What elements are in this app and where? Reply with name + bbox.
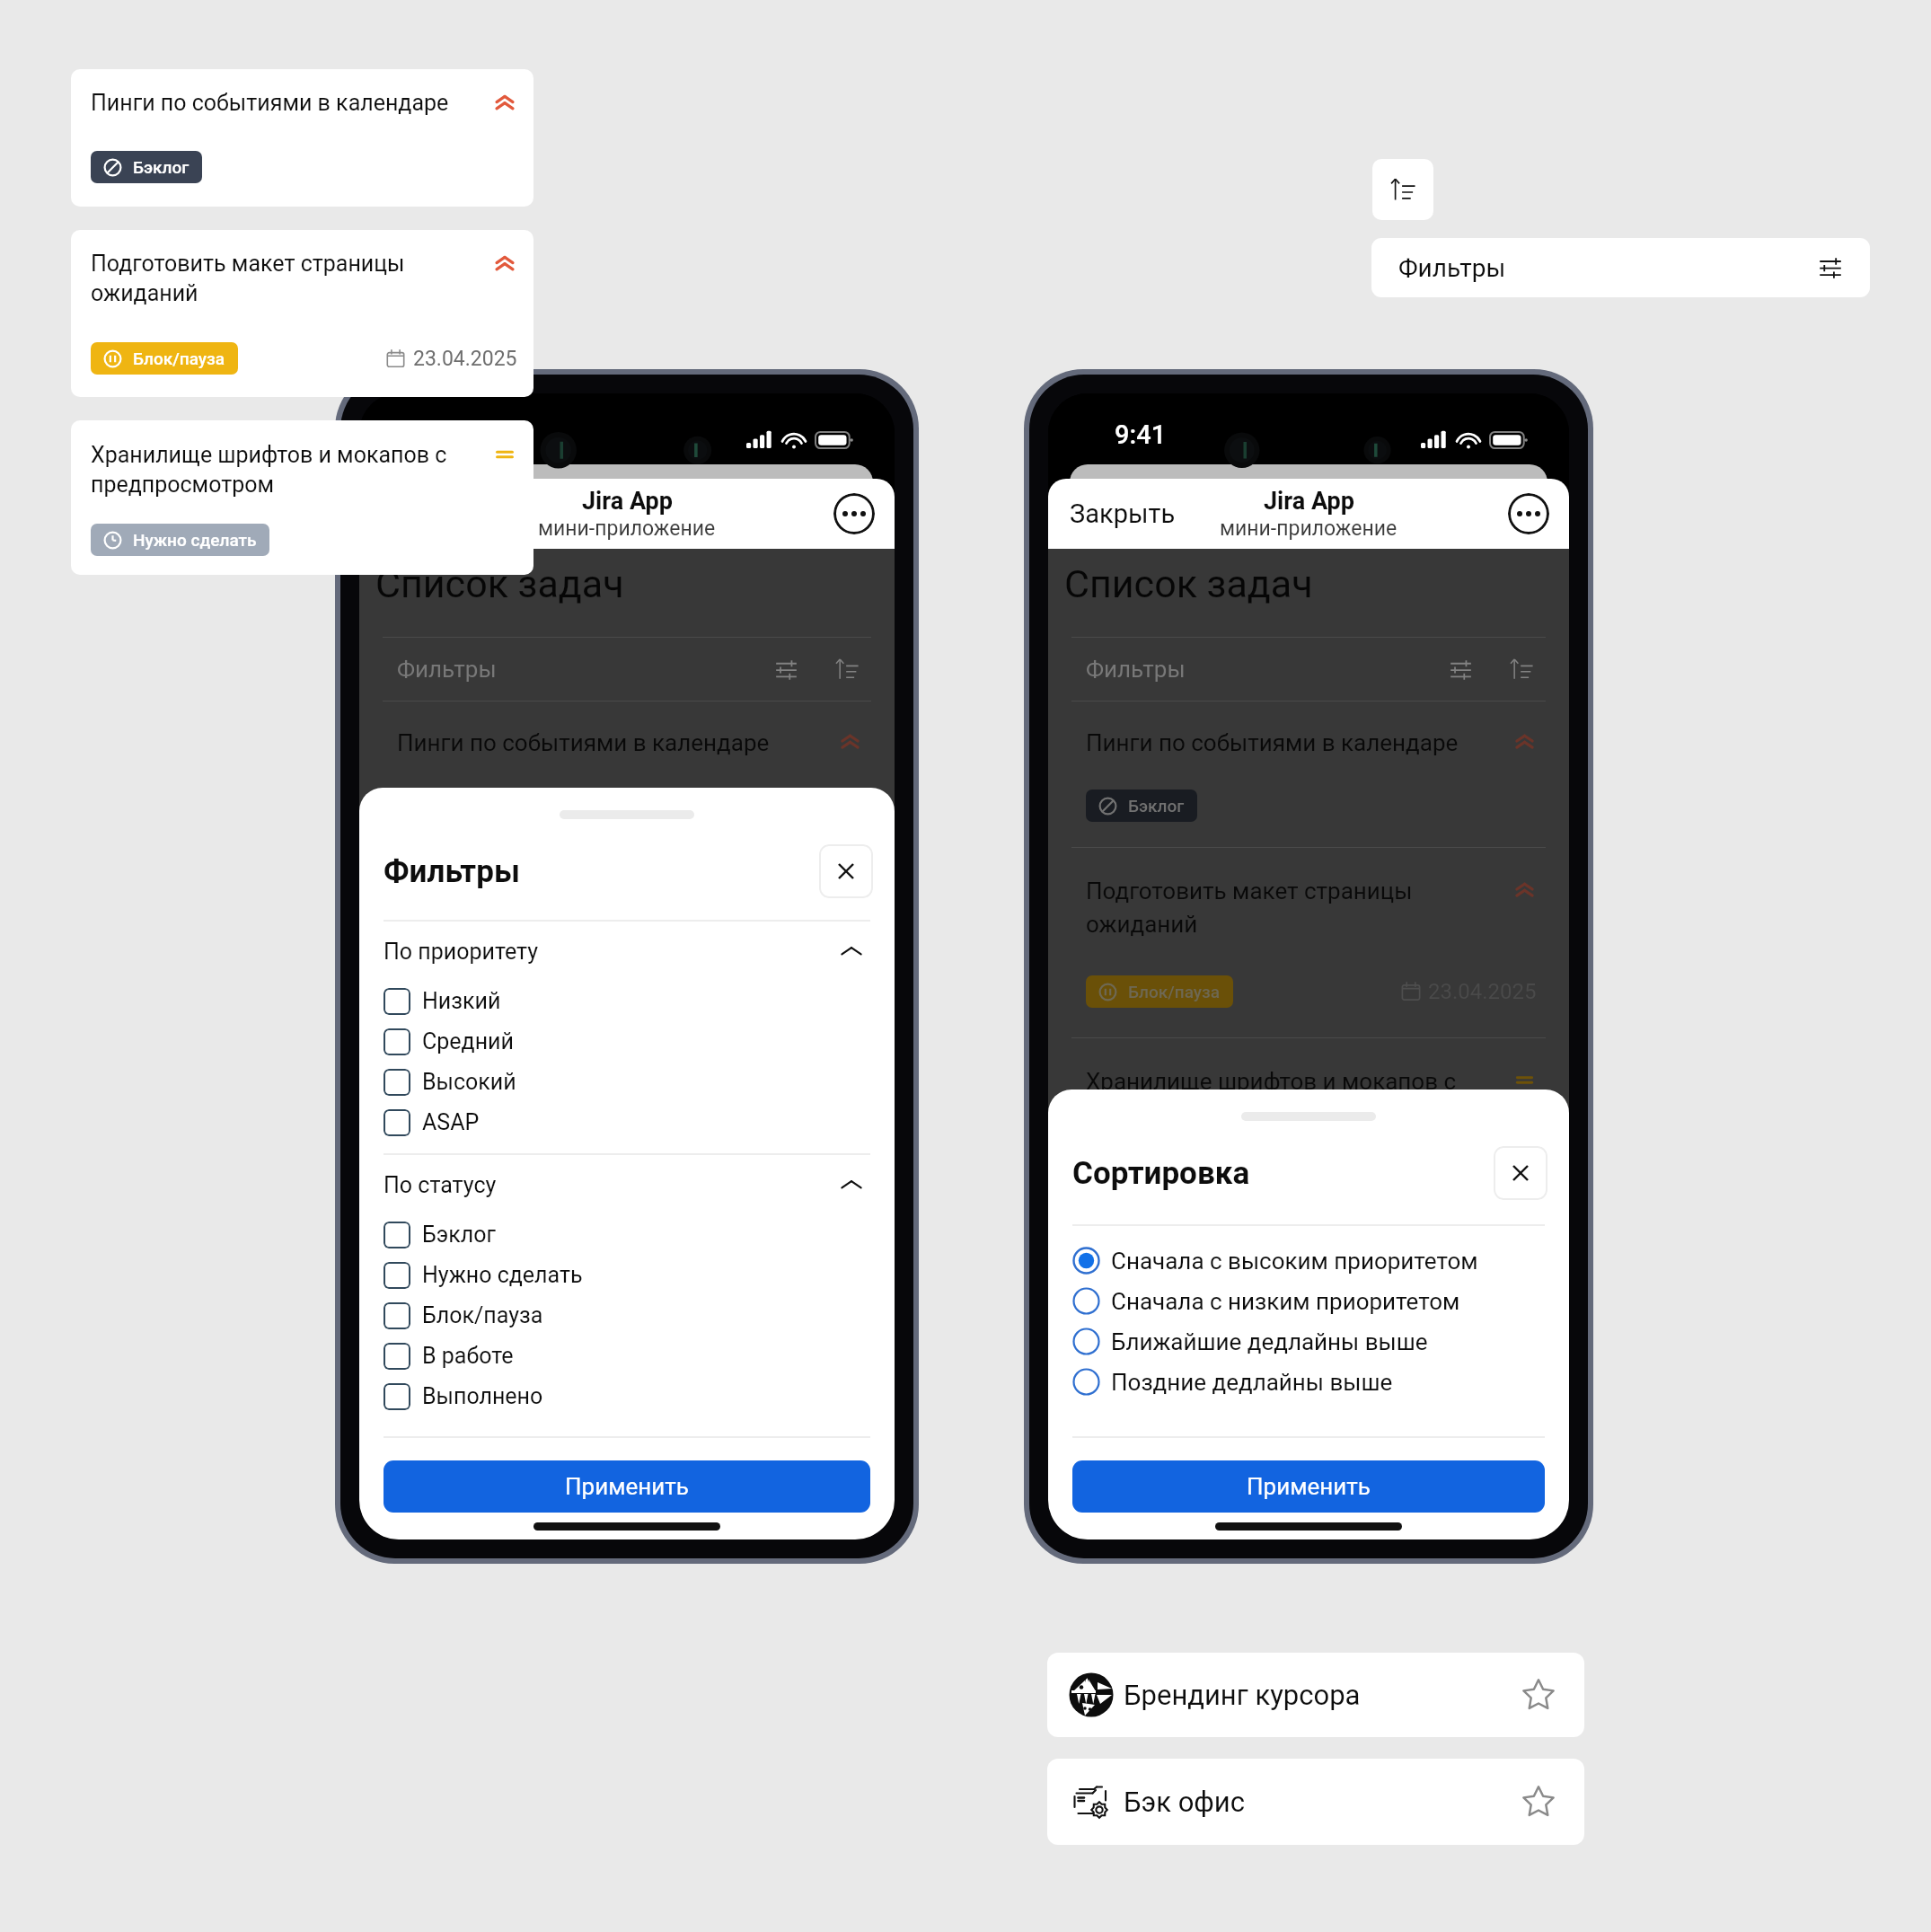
button[interactable]: Закрыть	[1048, 479, 1186, 549]
staticText: Список задач	[375, 561, 624, 606]
staticText: Jira App	[1264, 487, 1354, 516]
staticText: Пинги по событиями в календаре	[1086, 729, 1472, 756]
button[interactable]: Нужно сделать	[359, 1255, 895, 1295]
button[interactable]: Пинги по событиями в календаре	[1048, 701, 1569, 847]
staticText: Бэклог	[133, 157, 190, 177]
button[interactable]: Sort	[1372, 159, 1433, 220]
button[interactable]: ASAP	[359, 1102, 895, 1142]
staticText: По приоритету	[384, 939, 539, 965]
staticText: Подготовить макет страницы ожиданий	[1086, 878, 1472, 938]
staticText: Фильтры	[1398, 253, 1506, 283]
staticText: Фильтры	[1086, 656, 1186, 683]
button[interactable]: Подготовить макет страницы ожиданий	[1048, 848, 1569, 1037]
staticText: ASAP	[422, 1109, 480, 1135]
button[interactable]: Бэк офис	[1047, 1759, 1584, 1845]
staticText: Закрыть	[1070, 498, 1176, 529]
staticText: Высокий	[422, 1069, 516, 1095]
staticText: Брендинг курсора	[1124, 1679, 1361, 1711]
button[interactable]: Применить	[384, 1460, 870, 1513]
button[interactable]: Фильтры	[1048, 638, 1473, 701]
staticText: Применить	[565, 1473, 689, 1500]
button[interactable]: Пинги по событиями в календаре	[71, 69, 533, 207]
button[interactable]: Сначала с низким приоритетом	[1048, 1281, 1569, 1321]
staticText: Хранилище шрифтов и мокапов с предпросмо…	[91, 442, 483, 498]
button[interactable]: Хранилище шрифтов и мокапов с предпросмо…	[359, 1038, 895, 1128]
button[interactable]: Выполнено	[359, 1376, 895, 1416]
staticText: Блок/пауза	[1128, 982, 1221, 1001]
staticText: По статусу	[384, 1172, 497, 1198]
staticText: Сначала с низким приоритетом	[1111, 1288, 1460, 1315]
button[interactable]: Брендинг курсора	[1047, 1653, 1584, 1737]
staticText: В работе	[422, 1343, 514, 1369]
staticText: Бэклог	[1128, 796, 1185, 816]
staticText: Поздние дедлайны выше	[1111, 1369, 1393, 1396]
button[interactable]: В работе	[359, 1336, 895, 1376]
button[interactable]: Применить	[1072, 1460, 1545, 1513]
staticText: Подготовить макет страницы ожиданий	[397, 878, 783, 938]
staticText: 23.04.2025	[413, 347, 517, 371]
staticText: Пинги по событиями в календаре	[397, 729, 783, 756]
button[interactable]: Sort	[798, 638, 895, 701]
button[interactable]: Блок/пауза	[359, 1295, 895, 1336]
staticText: Пинги по событиями в календаре	[91, 90, 483, 116]
staticText: 23.04.2025	[1428, 979, 1537, 1004]
button[interactable]: Высокий	[359, 1062, 895, 1102]
staticText: Применить	[1247, 1473, 1371, 1500]
button[interactable]: More options	[1508, 493, 1549, 534]
staticText: Бэк офис	[1124, 1786, 1245, 1818]
button[interactable]: Фильтры	[359, 638, 798, 701]
button[interactable]: Sort	[1473, 638, 1569, 701]
button[interactable]: Ближайшие дедлайны выше	[1048, 1321, 1569, 1362]
staticText: Нужно сделать	[422, 1262, 583, 1288]
staticText: Выполнено	[422, 1383, 543, 1409]
staticText: Блок/пауза	[422, 1302, 543, 1328]
staticText: Сортировка	[1072, 1155, 1250, 1192]
button[interactable]: Средний	[359, 1021, 895, 1062]
button[interactable]: По статусу	[384, 1155, 864, 1214]
button[interactable]: Close	[1494, 1146, 1547, 1200]
button[interactable]: Поздние дедлайны выше	[1048, 1362, 1569, 1402]
staticText: Список задач	[1064, 561, 1313, 606]
staticText: Блок/пауза	[439, 982, 532, 1001]
button[interactable]: Бэклог	[359, 1214, 895, 1255]
button[interactable]: Низкий	[359, 981, 895, 1021]
staticText: мини-приложение	[1220, 516, 1398, 541]
button[interactable]: Подготовить макет страницы ожиданий	[71, 230, 533, 397]
button[interactable]: Сначала с высоким приоритетом	[1048, 1240, 1569, 1281]
staticText: Бэклог	[422, 1222, 496, 1248]
staticText: Подготовить макет страницы ожиданий	[91, 251, 483, 306]
staticText: Хранилище шрифтов и мокапов с предпросмо…	[397, 1068, 783, 1128]
staticText: Фильтры	[397, 656, 497, 683]
button[interactable]: Хранилище шрифтов и мокапов с предпросмо…	[1048, 1038, 1569, 1128]
staticText: Хранилище шрифтов и мокапов с предпросмо…	[1086, 1068, 1472, 1128]
button[interactable]: Хранилище шрифтов и мокапов с предпросмо…	[71, 420, 533, 575]
staticText: Jira App	[582, 487, 673, 516]
staticText: мини-приложение	[538, 516, 716, 541]
button[interactable]: Close	[819, 844, 873, 898]
staticText: Сначала с высоким приоритетом	[1111, 1248, 1478, 1275]
staticText: Нужно сделать	[133, 530, 257, 550]
staticText: 9:41	[1115, 419, 1167, 450]
button[interactable]: Фильтры	[1371, 238, 1870, 297]
staticText: Блок/пауза	[133, 348, 225, 368]
button[interactable]: Подготовить макет страницы ожиданий	[359, 848, 895, 1037]
button[interactable]: More options	[833, 493, 875, 534]
button[interactable]: По приоритету	[384, 922, 864, 981]
staticText: Фильтры	[384, 853, 520, 890]
button[interactable]: Пинги по событиями в календаре	[359, 701, 895, 847]
staticText: Ближайшие дедлайны выше	[1111, 1328, 1428, 1355]
staticText: Средний	[422, 1028, 514, 1054]
staticText: Низкий	[422, 988, 501, 1014]
